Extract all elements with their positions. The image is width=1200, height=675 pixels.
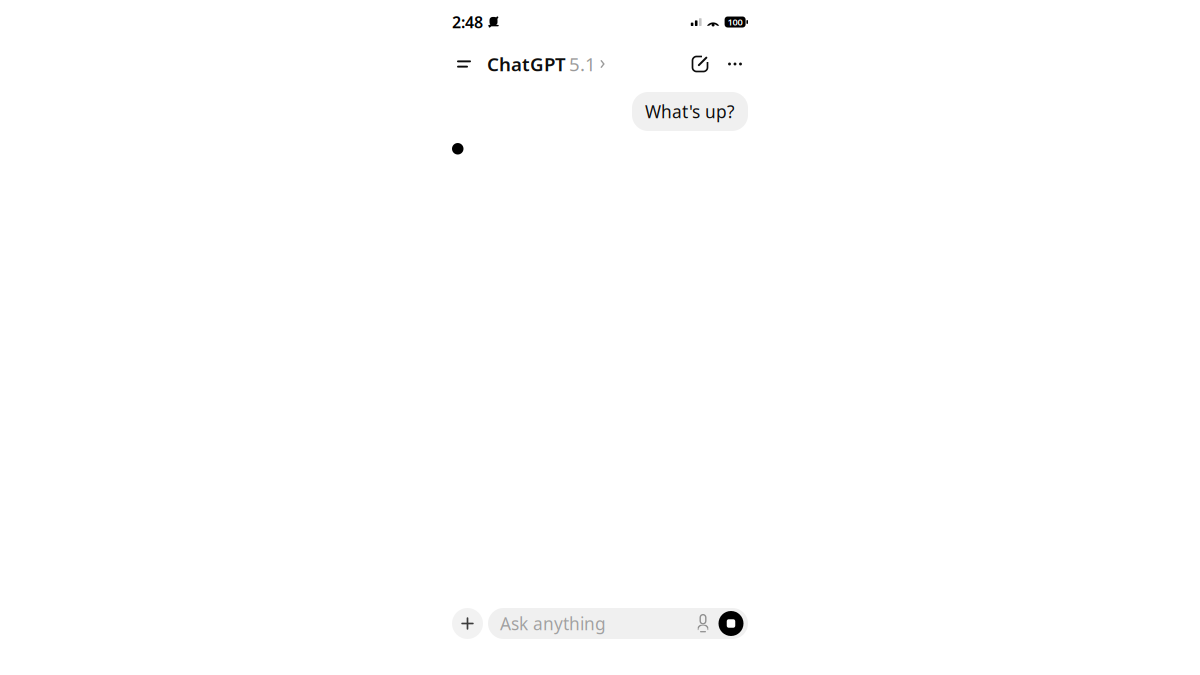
staticText: 100 bbox=[728, 16, 743, 28]
staticText: Ask anything bbox=[500, 612, 606, 635]
button[interactable]: Stop generating bbox=[717, 608, 745, 639]
staticText: 5.1 bbox=[569, 52, 596, 76]
button[interactable]: ChatGPT bbox=[487, 49, 606, 79]
button[interactable]: Sidebar bbox=[452, 49, 478, 79]
button[interactable]: New chat bbox=[685, 49, 715, 79]
button[interactable]: More options bbox=[722, 49, 748, 79]
button[interactable]: Add attachment bbox=[452, 608, 483, 639]
staticText: 2:48 bbox=[452, 11, 483, 33]
staticText: ChatGPT bbox=[487, 52, 566, 76]
staticText: What's up? bbox=[645, 100, 735, 123]
button[interactable]: Dictate bbox=[692, 608, 714, 639]
button[interactable]: Ask anything bbox=[488, 608, 748, 639]
